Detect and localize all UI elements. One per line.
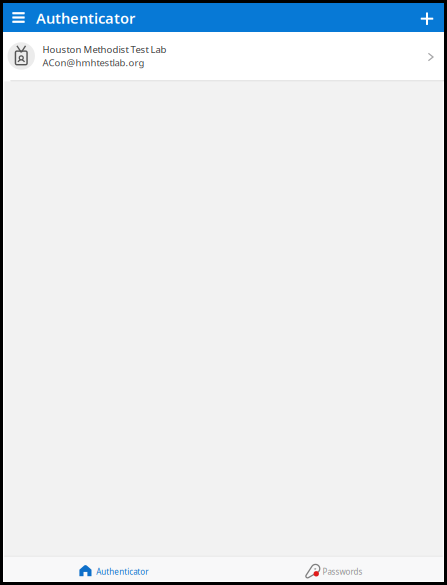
staticText: Houston Methodist Test Lab	[43, 43, 167, 56]
button[interactable]: Houston Methodist Test Lab	[3, 32, 444, 80]
staticText: ACon@hmhtestlab.org	[43, 56, 145, 69]
staticText: Passwords	[322, 566, 362, 577]
staticText: Authenticator	[36, 8, 135, 28]
button[interactable]: Authenticator	[4, 557, 223, 581]
button[interactable]: Passwords	[223, 557, 443, 581]
button[interactable]: Menu	[3, 3, 29, 32]
staticText: Authenticator	[96, 566, 148, 577]
button[interactable]: Add	[415, 3, 444, 32]
